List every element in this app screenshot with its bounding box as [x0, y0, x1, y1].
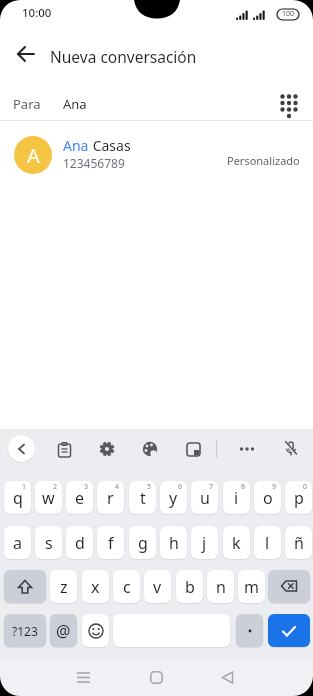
staticText: d	[75, 532, 85, 554]
button[interactable]: c	[113, 570, 140, 603]
button[interactable]: n	[207, 570, 234, 603]
staticText: 10:00	[22, 5, 52, 21]
button[interactable]: ñ	[285, 526, 312, 559]
staticText: s	[45, 532, 53, 554]
button[interactable]: q	[4, 481, 31, 514]
button[interactable]	[236, 614, 263, 647]
staticText: k	[232, 532, 241, 554]
staticText: q	[13, 487, 23, 509]
button[interactable]: z	[50, 570, 77, 603]
button[interactable]	[235, 437, 259, 461]
staticText: 5	[147, 482, 152, 492]
staticText: Ana	[63, 136, 89, 155]
button[interactable]	[68, 662, 98, 692]
staticText: 0	[303, 482, 308, 492]
staticText: 123456789	[63, 155, 125, 171]
button[interactable]	[181, 437, 205, 461]
staticText: A	[27, 142, 40, 169]
staticText: e	[75, 487, 85, 509]
staticText: Personalizado	[227, 153, 300, 168]
staticText: b	[185, 576, 195, 598]
staticText: i	[234, 487, 239, 509]
staticText: ñ	[294, 532, 304, 554]
staticText: n	[216, 576, 226, 598]
staticText: c	[123, 576, 131, 598]
staticText: u	[200, 487, 210, 509]
staticText: x	[91, 576, 100, 598]
button[interactable]	[4, 570, 46, 603]
staticText: 6	[178, 482, 183, 492]
button[interactable]: j	[191, 526, 218, 559]
staticText: 3	[84, 482, 89, 492]
button[interactable]: f	[97, 526, 124, 559]
button[interactable]: u	[191, 481, 218, 514]
button[interactable]	[272, 86, 306, 120]
staticText: m	[244, 576, 259, 598]
staticText: 100	[282, 9, 295, 19]
staticText: Para	[13, 95, 41, 113]
staticText: l	[265, 532, 270, 554]
button[interactable]	[268, 614, 310, 647]
staticText: @	[56, 620, 71, 642]
staticText: o	[263, 487, 273, 509]
button[interactable]	[8, 37, 44, 73]
button[interactable]: s	[35, 526, 62, 559]
staticText: v	[153, 576, 162, 598]
button[interactable]: x	[82, 570, 109, 603]
button[interactable]	[279, 437, 303, 461]
button[interactable]: v	[144, 570, 171, 603]
staticText: ?123	[12, 623, 38, 639]
button[interactable]: ?123	[4, 614, 46, 647]
button[interactable]: d	[66, 526, 93, 559]
button[interactable]: k	[223, 526, 250, 559]
staticText: Nueva conversación	[50, 46, 197, 67]
staticText: 8	[241, 482, 246, 492]
button[interactable]: g	[129, 526, 156, 559]
button[interactable]: w	[35, 481, 62, 514]
staticText: Casas	[89, 136, 131, 155]
staticText: 2	[53, 482, 58, 492]
button[interactable]: a	[4, 526, 31, 559]
button[interactable]: p	[285, 481, 312, 514]
button[interactable]	[52, 437, 76, 461]
button[interactable]	[268, 570, 310, 603]
button[interactable]: y	[160, 481, 187, 514]
button[interactable]: @	[50, 614, 77, 647]
staticText: 4	[115, 482, 120, 492]
staticText: w	[42, 487, 55, 509]
button[interactable]: l	[254, 526, 281, 559]
staticText: 9	[272, 482, 277, 492]
button[interactable]	[212, 662, 242, 692]
button[interactable]: m	[238, 570, 265, 603]
staticText: f	[108, 532, 114, 554]
button[interactable]: t	[129, 481, 156, 514]
button[interactable]: o	[254, 481, 281, 514]
staticText: j	[202, 532, 207, 554]
button[interactable]	[8, 435, 35, 462]
button[interactable]	[0, 125, 313, 185]
button[interactable]: e	[66, 481, 93, 514]
button[interactable]	[138, 437, 162, 461]
button[interactable]	[82, 614, 109, 647]
button[interactable]: h	[160, 526, 187, 559]
button[interactable]: i	[223, 481, 250, 514]
staticText: r	[107, 487, 114, 509]
staticText: p	[294, 487, 304, 509]
staticText: h	[169, 532, 179, 554]
button[interactable]: b	[176, 570, 203, 603]
staticText: a	[13, 532, 22, 554]
staticText: t	[140, 487, 146, 509]
staticText: Ana	[63, 95, 87, 113]
staticText: y	[169, 487, 178, 509]
staticText: g	[138, 532, 148, 554]
button[interactable]	[141, 662, 171, 692]
staticText: 1	[22, 482, 27, 492]
button[interactable]	[95, 437, 119, 461]
button[interactable]: r	[97, 481, 124, 514]
staticText: 7	[209, 482, 214, 492]
staticText: z	[60, 576, 68, 598]
